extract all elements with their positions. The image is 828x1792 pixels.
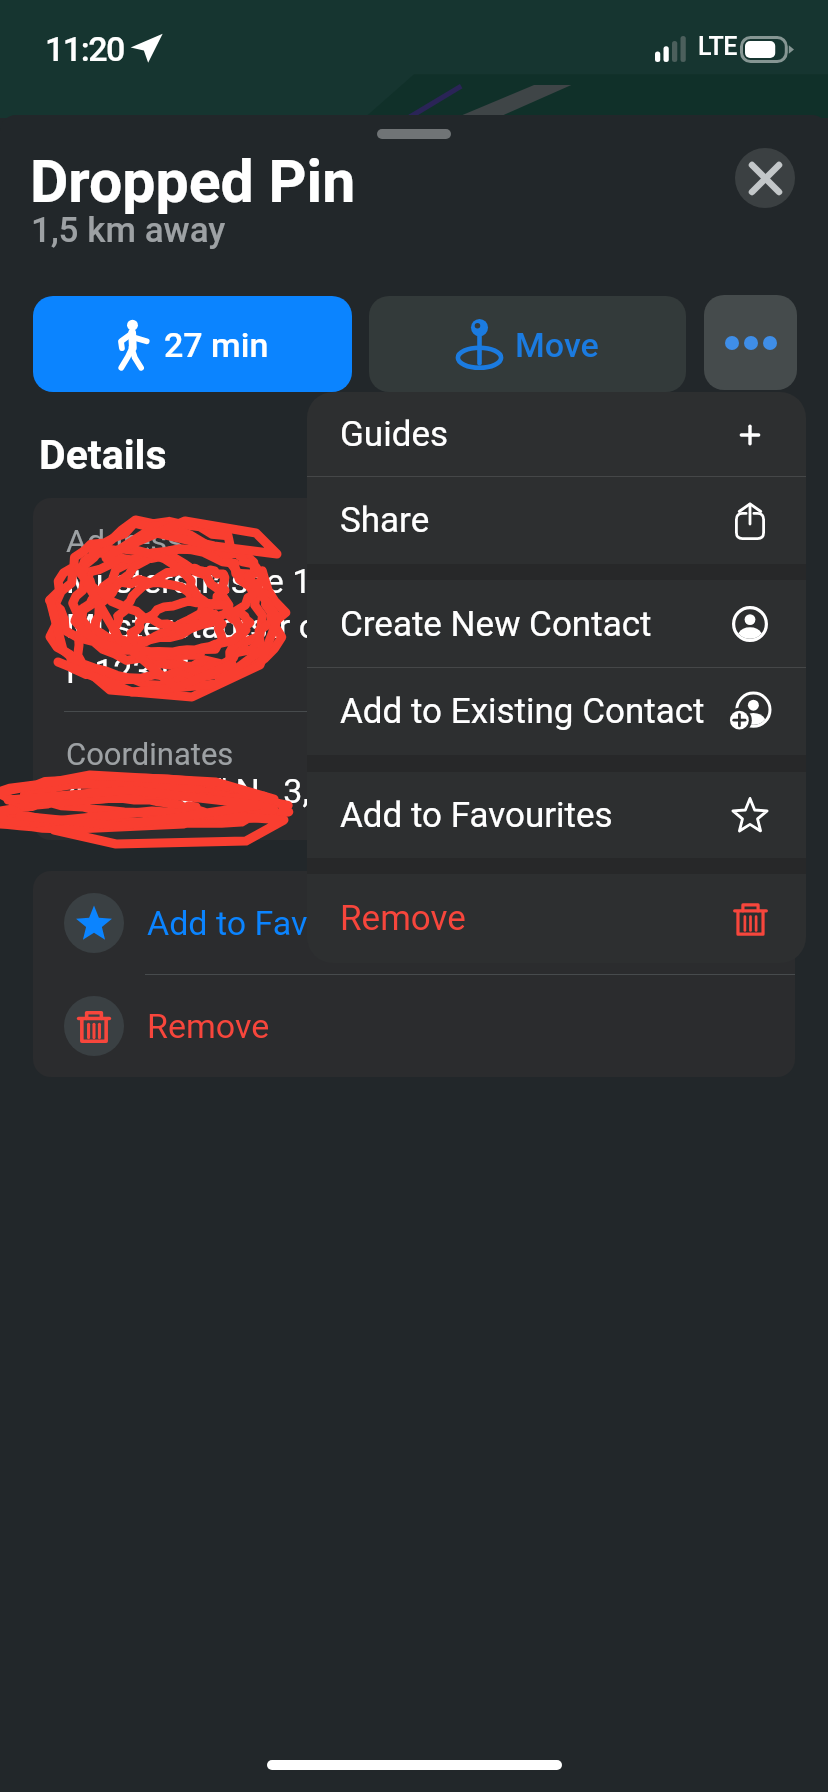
staticText: Remove [340,898,728,939]
button[interactable]: Close [735,148,795,208]
staticText: Details [39,431,167,479]
staticText: Add to Favourites [340,795,728,836]
button[interactable]: Add to Existing Contact [307,668,806,755]
staticText: Coordinates [66,736,234,772]
staticText: Add to Existing Contact [340,691,728,732]
staticText: Musterstrasse 112 ges Musterstadtstr or … [66,561,413,691]
staticText: Dropped Pin [30,147,356,216]
staticText: Remove [147,1006,270,1046]
button[interactable]: 27 min [33,296,352,392]
staticText: 1,5 km away [31,210,226,251]
staticText: Address [66,522,184,560]
button[interactable]: More options [704,295,797,390]
staticText: Share [340,500,728,541]
button[interactable]: Remove [33,975,795,1077]
button[interactable]: Remove [307,874,806,963]
staticText: 11:20 [45,29,124,69]
staticText: Move [515,325,599,365]
staticText: 47° 00′ 00″ N, 3,5 [66,771,329,811]
staticText: Guides [340,414,728,455]
button[interactable]: Add to Favourites [33,871,795,974]
staticText: Create New Contact [340,604,728,645]
button[interactable]: Move [369,296,686,392]
staticText: 27 min [164,325,269,365]
button[interactable]: Add to Favourites [307,772,806,858]
staticText: Add to Favourites [147,903,412,943]
button[interactable]: Share [307,477,806,564]
button[interactable]: Create New Contact [307,580,806,668]
button[interactable]: Guides [307,392,806,477]
staticText: LTE [698,32,737,61]
